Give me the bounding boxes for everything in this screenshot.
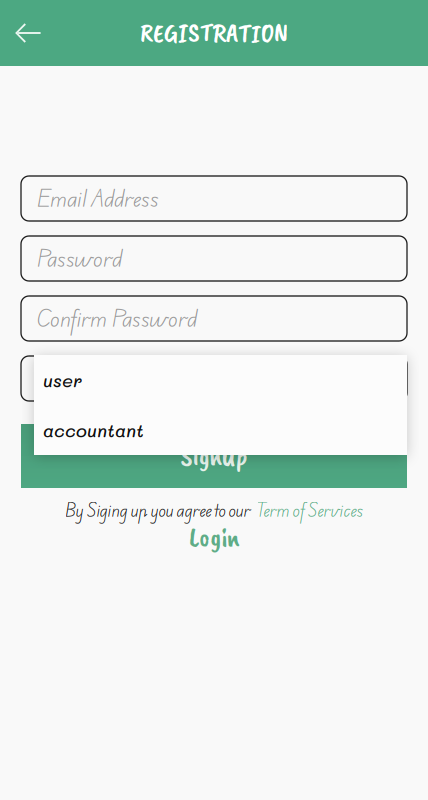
staticText: REGISTRATION bbox=[140, 16, 288, 50]
button[interactable]: Select Role bbox=[21, 356, 407, 401]
staticText: Term of Services bbox=[255, 497, 363, 524]
button[interactable]: Term of Services bbox=[255, 497, 363, 524]
staticText: Email Address bbox=[36, 181, 159, 216]
staticText: By Siging up you agree to our bbox=[64, 497, 250, 524]
staticText: Select Role bbox=[36, 361, 127, 396]
staticText: Confirm Password bbox=[36, 301, 197, 336]
button[interactable]: Back bbox=[0, 0, 60, 66]
staticText: SignUp bbox=[180, 438, 247, 474]
button[interactable]: Login bbox=[189, 520, 239, 555]
button[interactable]: user bbox=[34, 355, 407, 405]
button[interactable]: Confirm Password bbox=[21, 296, 407, 341]
staticText: Login bbox=[189, 520, 239, 555]
staticText: accountant bbox=[43, 418, 144, 442]
staticText: Password bbox=[36, 241, 122, 276]
button[interactable]: Email Address bbox=[21, 176, 407, 221]
staticText: user bbox=[43, 368, 82, 392]
button[interactable]: accountant bbox=[34, 405, 407, 455]
button[interactable]: Password bbox=[21, 236, 407, 281]
button[interactable]: SignUp bbox=[21, 424, 407, 488]
